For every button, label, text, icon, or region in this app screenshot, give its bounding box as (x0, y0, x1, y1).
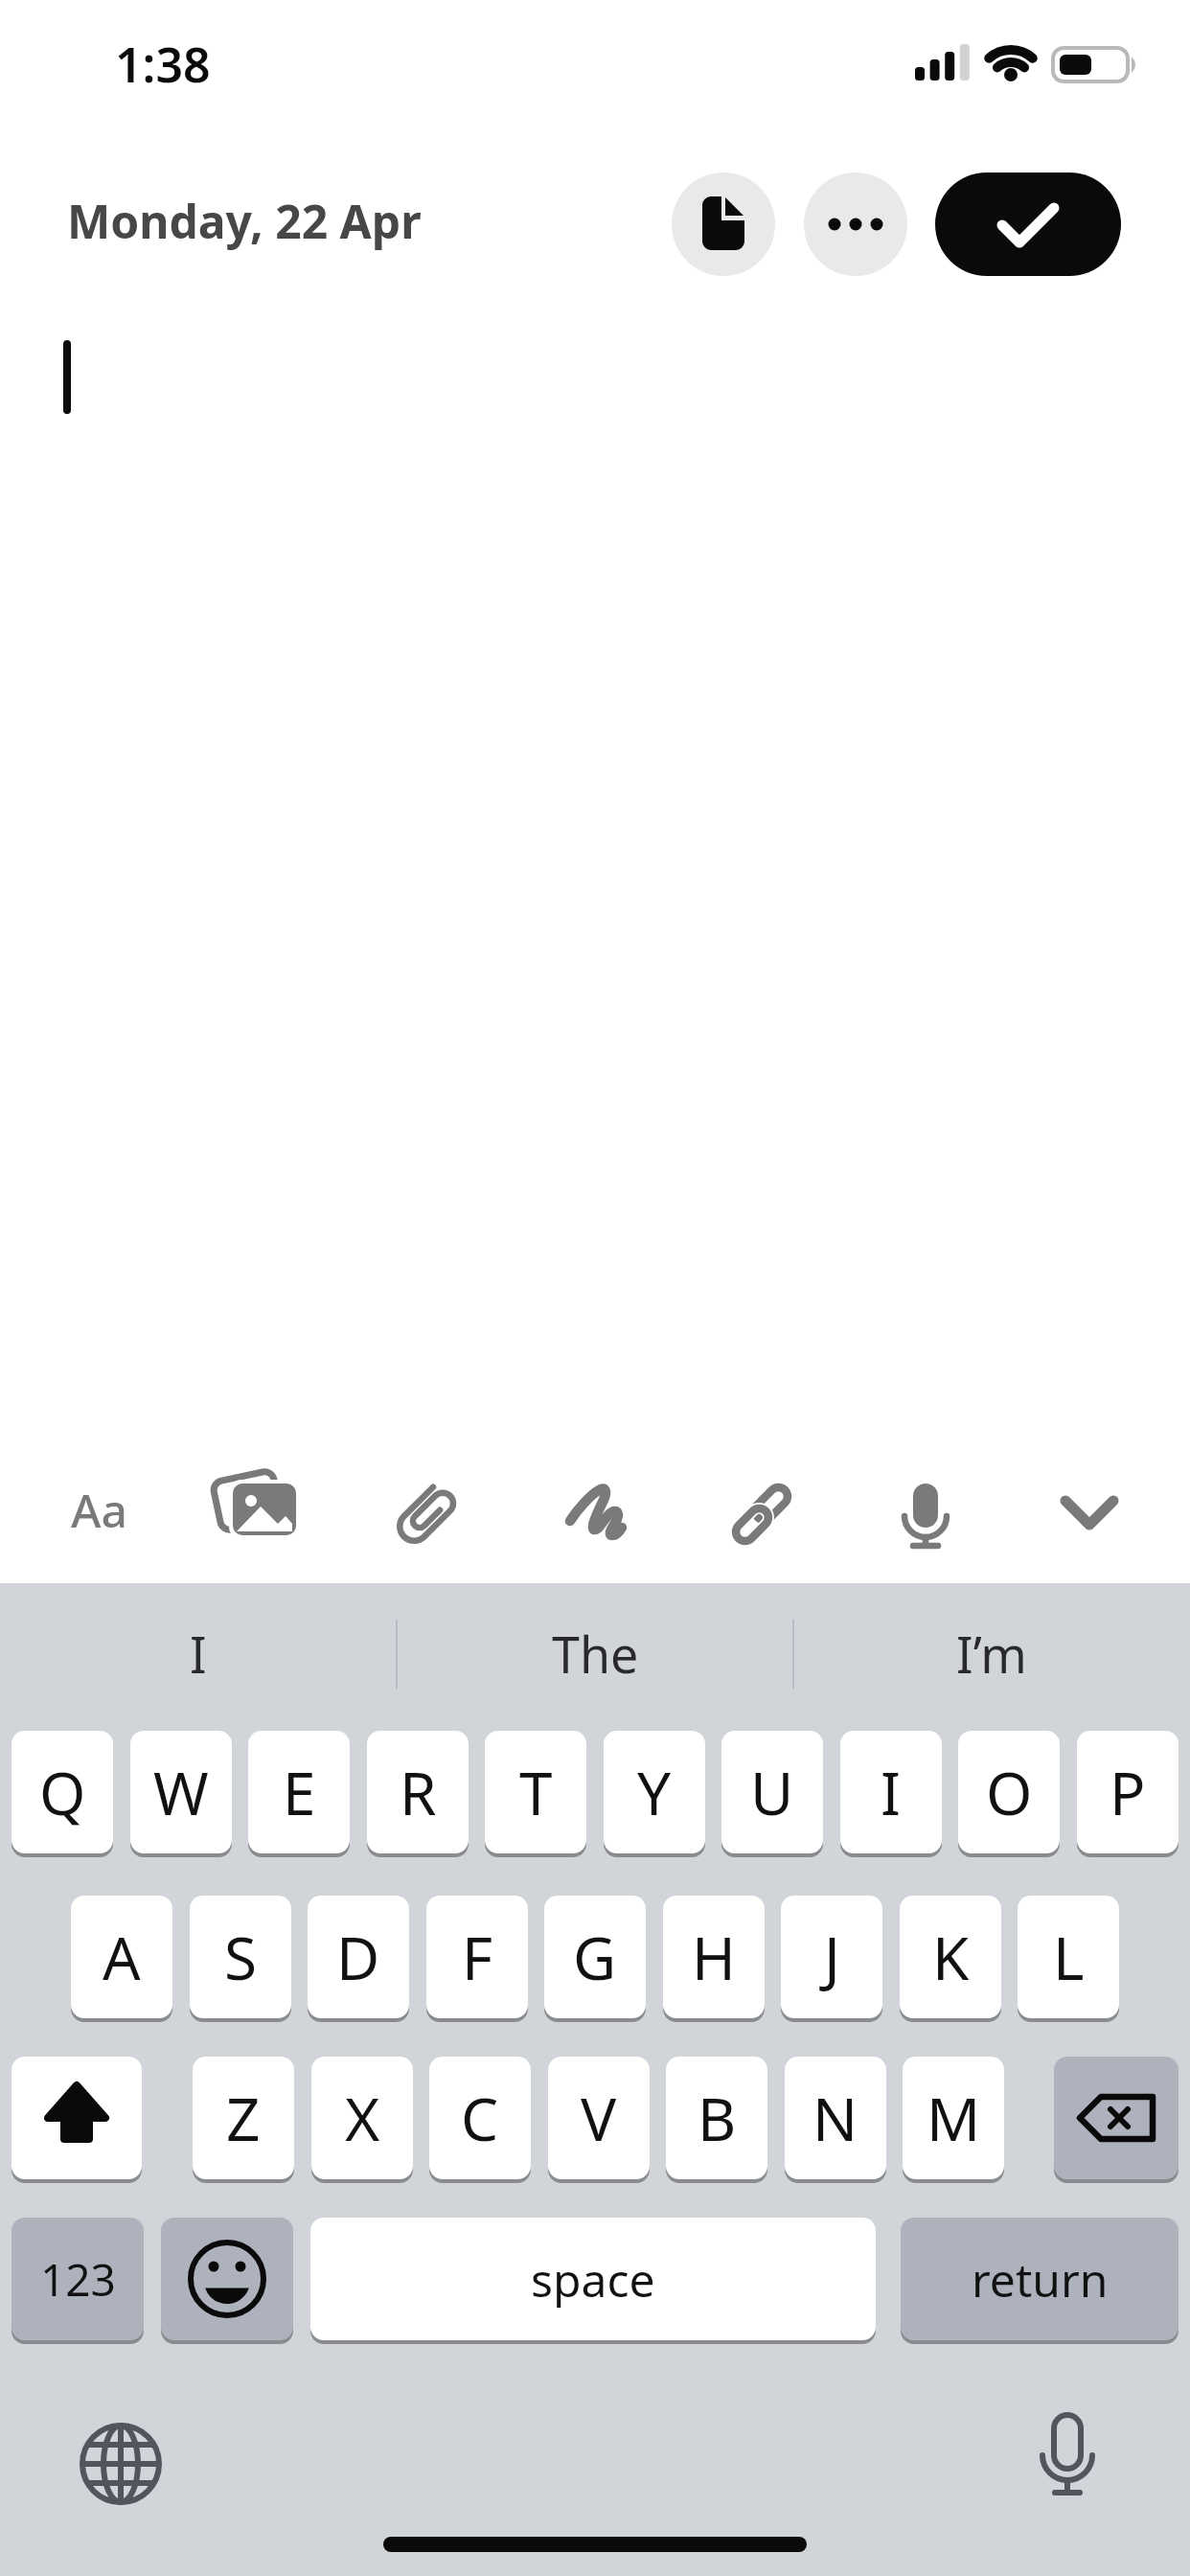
staticText: C (461, 2078, 499, 2158)
staticText: return (972, 2248, 1109, 2311)
button[interactable]: J (781, 1896, 882, 2018)
staticText: Z (226, 2078, 261, 2158)
staticText: 1:38 (115, 32, 211, 97)
staticText: H (692, 1917, 736, 1997)
button[interactable] (387, 1466, 473, 1552)
staticText: Q (39, 1752, 86, 1832)
button[interactable]: I (0, 1610, 397, 1696)
button[interactable] (882, 1466, 969, 1552)
button[interactable]: H (663, 1896, 765, 2018)
staticText: K (932, 1917, 970, 1997)
button[interactable] (719, 1466, 805, 1552)
staticText: S (224, 1917, 258, 1997)
staticText: Monday, 22 Apr (67, 190, 422, 252)
button[interactable]: W (130, 1731, 232, 1853)
button[interactable]: Aa (46, 1466, 151, 1552)
button[interactable]: U (721, 1731, 823, 1853)
staticText: N (812, 2078, 858, 2158)
button[interactable]: R (367, 1731, 469, 1853)
staticText: R (400, 1752, 437, 1832)
staticText: O (986, 1752, 1033, 1832)
staticText: Aa (71, 1479, 127, 1541)
button[interactable]: X (311, 2057, 413, 2179)
staticText: I’m (956, 1620, 1027, 1688)
button[interactable]: The (397, 1610, 793, 1696)
button[interactable]: Z (193, 2057, 294, 2179)
staticText: I (881, 1752, 902, 1832)
button[interactable] (11, 2057, 142, 2179)
staticText: D (336, 1917, 380, 1997)
staticText: W (153, 1752, 209, 1832)
button[interactable]: L (1018, 1896, 1119, 2018)
staticText: U (750, 1752, 794, 1832)
button[interactable] (161, 2218, 293, 2340)
button[interactable] (1054, 2057, 1179, 2179)
button[interactable]: K (900, 1896, 1001, 2018)
staticText: X (345, 2078, 380, 2158)
button[interactable]: O (958, 1731, 1060, 1853)
button[interactable]: return (901, 2218, 1179, 2340)
staticText: Y (637, 1752, 672, 1832)
button[interactable]: T (485, 1731, 586, 1853)
staticText: I (190, 1620, 207, 1688)
staticText: V (581, 2078, 617, 2158)
button[interactable]: M (903, 2057, 1004, 2179)
button[interactable] (804, 172, 907, 276)
button[interactable]: V (548, 2057, 650, 2179)
button[interactable]: S (190, 1896, 291, 2018)
button[interactable]: N (785, 2057, 886, 2179)
button[interactable] (1046, 1466, 1133, 1552)
button[interactable]: Q (11, 1731, 113, 1853)
staticText: 123 (40, 2249, 116, 2310)
staticText: J (824, 1917, 840, 1997)
staticText: E (283, 1752, 316, 1832)
button[interactable]: G (544, 1896, 646, 2018)
staticText: P (1110, 1752, 1146, 1832)
staticText: B (698, 2078, 737, 2158)
button[interactable]: 123 (11, 2218, 144, 2340)
button[interactable]: F (426, 1896, 528, 2018)
staticText: space (531, 2248, 655, 2311)
button[interactable]: A (71, 1896, 172, 2018)
staticText: M (927, 2078, 981, 2158)
button[interactable]: E (248, 1731, 350, 1853)
button[interactable]: D (308, 1896, 409, 2018)
button[interactable] (551, 1466, 637, 1552)
button[interactable]: B (666, 2057, 767, 2179)
button[interactable]: space (310, 2218, 876, 2340)
button[interactable] (219, 1466, 306, 1552)
staticText: The (552, 1620, 639, 1688)
button[interactable] (935, 172, 1121, 276)
button[interactable] (672, 172, 775, 276)
staticText: G (573, 1917, 617, 1997)
button[interactable]: I (840, 1731, 942, 1853)
staticText: L (1053, 1917, 1085, 1997)
staticText: T (519, 1752, 553, 1832)
button[interactable]: P (1077, 1731, 1179, 1853)
staticText: F (462, 1917, 493, 1997)
button[interactable]: C (429, 2057, 531, 2179)
staticText: A (103, 1917, 141, 1997)
button[interactable]: Y (604, 1731, 705, 1853)
button[interactable]: I’m (793, 1610, 1190, 1696)
